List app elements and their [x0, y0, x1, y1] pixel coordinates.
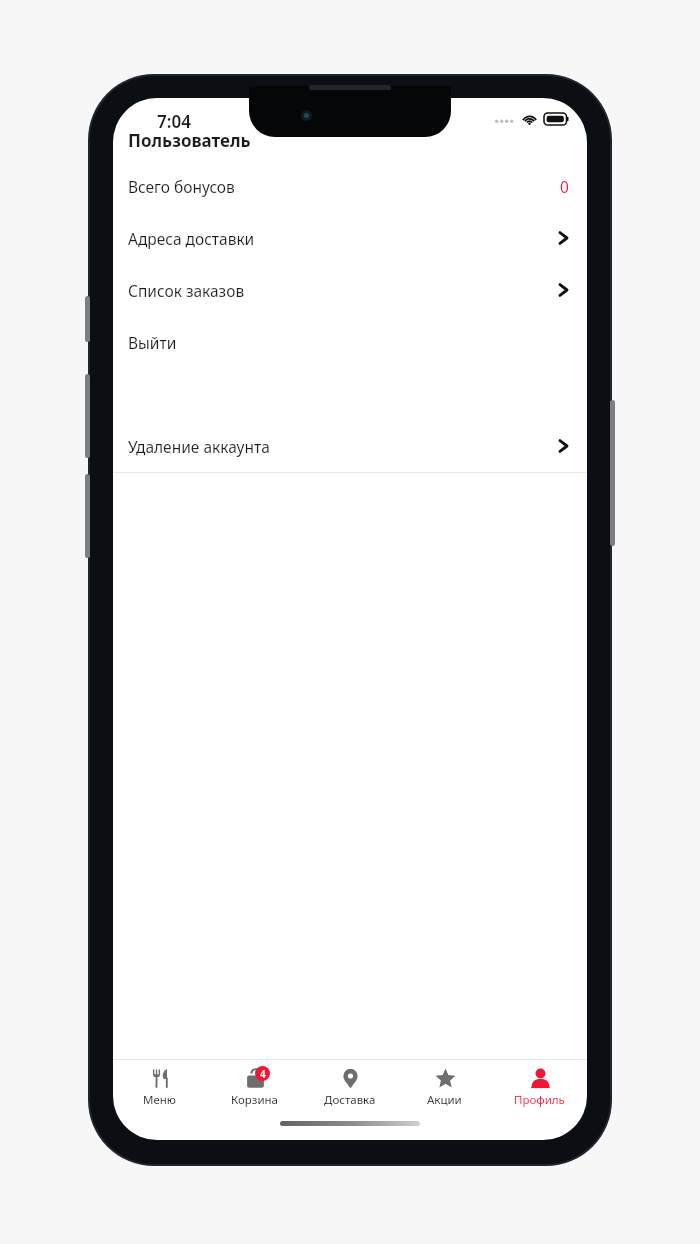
button[interactable]: Список заказов: [113, 264, 587, 316]
staticText: Профиль: [514, 1092, 565, 1108]
staticText: 0: [560, 176, 569, 197]
staticText: Выйти: [128, 332, 177, 353]
staticText: Меню: [143, 1092, 177, 1108]
button[interactable]: Выйти: [113, 316, 587, 368]
button[interactable]: Профиль: [492, 1060, 587, 1114]
button[interactable]: Доставка: [302, 1060, 397, 1114]
staticText: 7:04: [157, 110, 191, 133]
staticText: Список заказов: [128, 280, 245, 301]
staticText: Адреса доставки: [128, 228, 255, 249]
staticText: Корзина: [231, 1092, 278, 1108]
button[interactable]: Корзина: [207, 1060, 302, 1114]
button[interactable]: Адреса доставки: [113, 212, 587, 264]
button[interactable]: Всего бонусов: [113, 160, 587, 212]
staticText: Всего бонусов: [128, 176, 235, 197]
staticText: 4: [260, 1067, 266, 1081]
staticText: Удаление аккаунта: [128, 436, 270, 457]
button[interactable]: Меню: [113, 1060, 207, 1114]
button[interactable]: Удаление аккаунта: [113, 420, 587, 472]
staticText: Акции: [427, 1092, 462, 1108]
button[interactable]: Акции: [397, 1060, 492, 1114]
staticText: Доставка: [324, 1092, 376, 1108]
staticText: Пользователь: [128, 129, 251, 152]
